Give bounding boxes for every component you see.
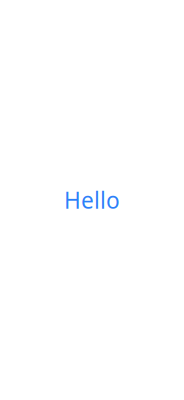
staticText: Hello bbox=[64, 185, 120, 215]
